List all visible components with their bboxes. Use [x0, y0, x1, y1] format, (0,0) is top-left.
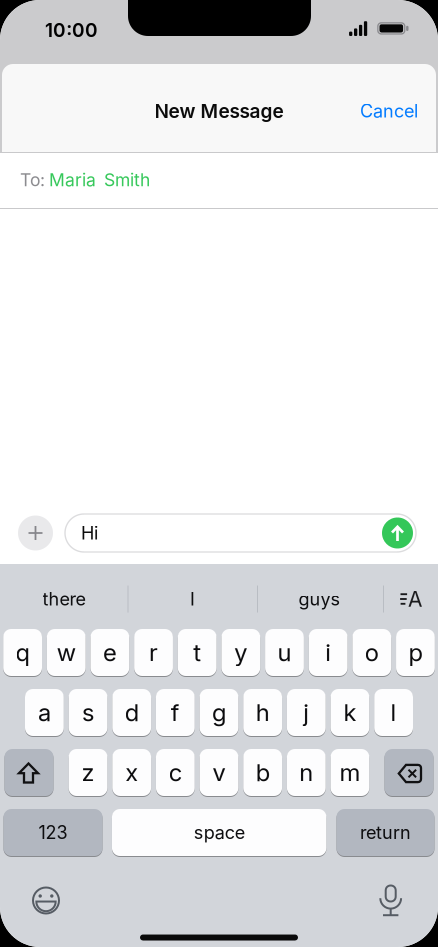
button[interactable]: Cancel — [360, 100, 418, 122]
button[interactable]: h — [243, 688, 282, 736]
staticText: l — [391, 698, 397, 727]
button[interactable]: p — [396, 628, 435, 676]
button[interactable]: w — [47, 628, 86, 676]
staticText: m — [339, 758, 360, 787]
button[interactable] — [382, 517, 413, 548]
button[interactable]: d — [112, 688, 151, 736]
button[interactable]: guys — [259, 576, 379, 622]
staticText: b — [256, 758, 270, 787]
button[interactable]: j — [287, 688, 326, 736]
staticText: j — [303, 698, 309, 727]
staticText: y — [234, 638, 247, 667]
staticText: i — [325, 638, 331, 667]
staticText: Cancel — [360, 100, 418, 122]
button[interactable]: b — [243, 748, 282, 796]
button[interactable]: n — [287, 748, 326, 796]
staticText: u — [277, 638, 291, 667]
staticText: r — [149, 638, 158, 667]
button[interactable]: a — [25, 688, 64, 736]
staticText: Maria — [49, 169, 96, 191]
staticText: q — [16, 638, 30, 667]
staticText: guys — [298, 588, 340, 610]
staticText: e — [103, 638, 117, 667]
staticText: z — [82, 758, 95, 787]
button[interactable] — [368, 878, 412, 922]
button[interactable] — [24, 878, 68, 922]
staticText: return — [360, 822, 411, 843]
staticText: 10:00 — [45, 18, 98, 41]
staticText: Hi — [81, 522, 98, 544]
staticText: p — [408, 638, 422, 667]
button[interactable]: i — [309, 628, 348, 676]
staticText: v — [212, 758, 225, 787]
staticText: 123 — [38, 822, 67, 843]
staticText: Smith — [104, 169, 150, 191]
staticText: I — [190, 588, 195, 610]
button[interactable] — [18, 515, 53, 550]
button[interactable]: f — [156, 688, 195, 736]
button[interactable] — [4, 748, 53, 796]
staticText: f — [171, 698, 180, 727]
staticText: space — [194, 822, 245, 843]
staticText: w — [57, 638, 76, 667]
staticText: n — [299, 758, 313, 787]
staticText: d — [125, 698, 139, 727]
button[interactable]: 123 — [3, 808, 102, 856]
button[interactable]: z — [69, 748, 107, 796]
staticText: h — [256, 698, 270, 727]
button[interactable]: o — [352, 628, 391, 676]
button[interactable]: c — [156, 748, 195, 796]
staticText: o — [365, 638, 379, 667]
staticText: g — [212, 698, 226, 727]
button[interactable]: e — [90, 628, 129, 676]
staticText: c — [169, 758, 182, 787]
button[interactable]: Hi — [65, 514, 416, 552]
staticText: t — [193, 638, 201, 667]
button[interactable]: r — [134, 628, 173, 676]
button[interactable]: To: — [0, 152, 438, 208]
button[interactable]: v — [200, 748, 238, 796]
button[interactable]: l — [374, 688, 413, 736]
button[interactable]: u — [265, 628, 304, 676]
button[interactable]: s — [69, 688, 107, 736]
staticText: A — [408, 586, 422, 612]
button[interactable]: A — [389, 583, 429, 615]
staticText: k — [343, 698, 356, 727]
button[interactable] — [384, 748, 433, 796]
button[interactable]: I — [132, 576, 252, 622]
button[interactable]: space — [112, 808, 326, 856]
staticText: s — [82, 698, 94, 727]
button[interactable]: return — [336, 808, 434, 856]
button[interactable]: x — [112, 748, 151, 796]
button[interactable]: t — [178, 628, 217, 676]
button[interactable]: y — [221, 628, 260, 676]
button[interactable]: q — [3, 628, 42, 676]
staticText: a — [38, 698, 51, 727]
button[interactable]: k — [331, 688, 369, 736]
button[interactable]: m — [331, 748, 369, 796]
staticText: x — [125, 758, 138, 787]
staticText: New Message — [154, 99, 283, 122]
button[interactable]: g — [200, 688, 238, 736]
staticText: To: — [20, 169, 45, 191]
staticText: there — [42, 588, 85, 610]
button[interactable]: there — [4, 576, 124, 622]
